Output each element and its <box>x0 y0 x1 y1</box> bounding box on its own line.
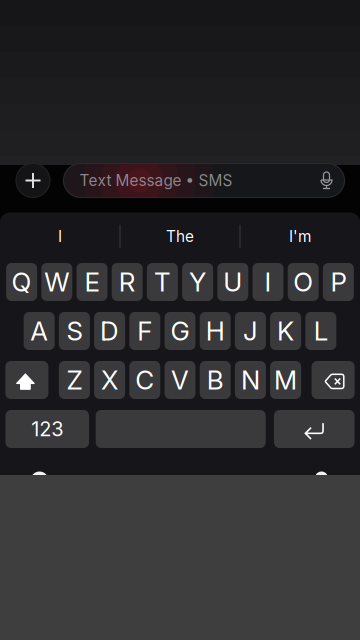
staticText: I <box>58 227 62 246</box>
button[interactable]: Dictate <box>313 163 339 197</box>
button[interactable]: Delete <box>312 361 355 399</box>
staticText: The <box>166 227 194 246</box>
staticText: L <box>314 315 328 347</box>
button[interactable]: X <box>94 361 125 399</box>
button[interactable]: Y <box>182 263 213 301</box>
staticText: U <box>223 266 242 298</box>
staticText: O <box>293 266 313 298</box>
staticText: A <box>30 315 48 347</box>
staticText: K <box>277 315 294 347</box>
button[interactable]: C <box>129 361 160 399</box>
button[interactable]: G <box>164 312 195 350</box>
staticText: H <box>206 315 225 347</box>
staticText: Y <box>189 266 206 298</box>
button[interactable]: H <box>200 312 231 350</box>
staticText: B <box>207 364 224 396</box>
staticText: J <box>243 315 258 347</box>
button[interactable]: K <box>270 312 301 350</box>
staticText: C <box>135 364 154 396</box>
button[interactable]: The <box>120 218 240 254</box>
staticText: Text Message • SMS <box>79 171 232 190</box>
staticText: M <box>274 364 297 396</box>
staticText: W <box>44 266 69 298</box>
staticText: S <box>66 315 82 347</box>
staticText: G <box>170 315 189 347</box>
staticText: T <box>154 266 171 298</box>
button[interactable]: N <box>235 361 266 399</box>
button[interactable]: I'm <box>240 218 360 254</box>
button[interactable]: Z <box>59 361 90 399</box>
button[interactable]: R <box>112 263 143 301</box>
staticText: X <box>101 364 118 396</box>
staticText: P <box>330 266 346 298</box>
staticText: N <box>241 364 260 396</box>
staticText: I <box>264 266 271 298</box>
button[interactable]: W <box>41 263 72 301</box>
button[interactable]: D <box>94 312 125 350</box>
staticText: 123 <box>31 417 63 441</box>
button[interactable]: Emoji <box>30 471 48 489</box>
staticText: R <box>119 266 136 298</box>
button[interactable]: T <box>147 263 178 301</box>
staticText: V <box>171 364 189 396</box>
button[interactable]: Shift <box>5 361 48 399</box>
button[interactable]: S <box>59 312 90 350</box>
staticText: Z <box>66 364 82 396</box>
staticText: F <box>137 315 152 347</box>
staticText: I'm <box>289 227 311 246</box>
staticText: D <box>100 315 119 347</box>
button[interactable]: P <box>323 263 354 301</box>
staticText: Q <box>12 266 32 298</box>
button[interactable]: E <box>76 263 107 301</box>
button[interactable]: I <box>0 218 120 254</box>
button[interactable]: B <box>200 361 231 399</box>
button[interactable]: L <box>305 312 336 350</box>
staticText: E <box>84 266 99 298</box>
button[interactable]: Add attachment <box>16 163 50 197</box>
button[interactable]: Return <box>274 410 354 448</box>
button[interactable]: M <box>270 361 301 399</box>
button[interactable]: Dictation <box>315 471 328 484</box>
button[interactable]: 123 <box>5 410 89 448</box>
button[interactable]: J <box>235 312 266 350</box>
button[interactable]: Q <box>6 263 37 301</box>
button[interactable]: O <box>288 263 319 301</box>
button[interactable]: A <box>24 312 55 350</box>
button[interactable]: U <box>217 263 248 301</box>
button[interactable]: I <box>252 263 283 301</box>
button[interactable]: V <box>164 361 195 399</box>
button[interactable]: F <box>129 312 160 350</box>
